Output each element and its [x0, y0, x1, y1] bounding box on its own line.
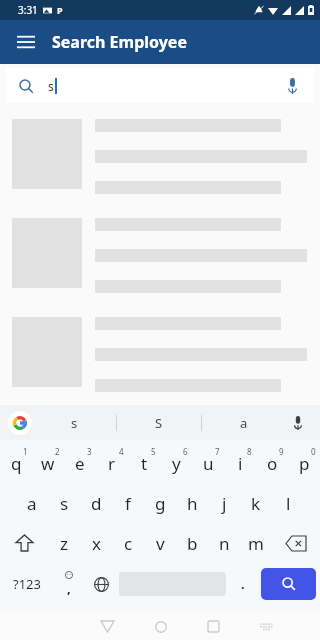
button[interactable]: t: [128, 443, 160, 483]
button[interactable]: i: [224, 443, 256, 483]
button[interactable]: b: [176, 523, 208, 563]
button[interactable]: q: [0, 443, 32, 483]
staticText: 7: [215, 446, 220, 457]
staticText: r: [108, 452, 116, 475]
button[interactable]: r: [96, 443, 128, 483]
button[interactable]: Voice search: [280, 74, 304, 98]
button[interactable]: Backspace: [272, 523, 320, 563]
staticText: 4: [119, 446, 124, 457]
staticText: w: [41, 452, 55, 475]
staticText: f: [125, 492, 131, 515]
staticText: 8: [247, 446, 252, 457]
staticText: 3:31: [18, 3, 38, 17]
button[interactable]: f: [112, 483, 144, 523]
staticText: t: [141, 452, 148, 475]
button[interactable]: w: [32, 443, 64, 483]
staticText: 9: [279, 446, 284, 457]
button[interactable]: .: [228, 563, 257, 605]
staticText: v: [156, 532, 165, 555]
button[interactable]: Google: [8, 411, 32, 435]
button[interactable]: j: [208, 483, 240, 523]
button[interactable]: h: [176, 483, 208, 523]
staticText: m: [248, 532, 264, 555]
staticText: k: [251, 492, 261, 515]
button[interactable]: s: [32, 405, 116, 440]
staticText: q: [11, 452, 22, 475]
staticText: 0: [311, 446, 316, 457]
button[interactable]: s: [6, 68, 314, 103]
staticText: 1: [23, 446, 28, 457]
button[interactable]: [0, 305, 320, 404]
staticText: i: [238, 452, 243, 475]
staticText: s: [48, 78, 54, 94]
staticText: u: [203, 452, 214, 475]
button[interactable]: s: [48, 483, 80, 523]
staticText: P: [57, 4, 63, 16]
button[interactable]: z: [48, 523, 80, 563]
staticText: p: [299, 452, 310, 475]
button[interactable]: y: [160, 443, 192, 483]
button[interactable]: n: [208, 523, 240, 563]
button[interactable]: m: [240, 523, 272, 563]
staticText: e: [75, 452, 85, 475]
button[interactable]: a: [16, 483, 48, 523]
button[interactable]: p: [288, 443, 320, 483]
button[interactable]: Recent apps: [187, 613, 240, 640]
button[interactable]: ?123: [0, 563, 53, 605]
staticText: .: [241, 575, 245, 593]
staticText: Search Employee: [52, 31, 187, 53]
button[interactable]: Search: [261, 568, 316, 600]
staticText: z: [60, 532, 68, 555]
staticText: o: [267, 452, 278, 475]
staticText: ?123: [13, 575, 41, 593]
staticText: b: [187, 532, 198, 555]
staticText: S: [155, 414, 163, 432]
staticText: 3: [87, 446, 92, 457]
staticText: d: [91, 492, 102, 515]
staticText: y: [172, 452, 181, 475]
button[interactable]: o: [256, 443, 288, 483]
button[interactable]: Home: [134, 613, 187, 640]
staticText: a: [27, 492, 37, 515]
button[interactable]: Voice input: [286, 411, 310, 435]
button[interactable]: S: [117, 405, 201, 440]
button[interactable]: Keyboard: [240, 613, 293, 640]
button[interactable]: [0, 206, 320, 305]
staticText: s: [71, 414, 78, 432]
staticText: g: [155, 492, 166, 515]
button[interactable]: l: [272, 483, 304, 523]
staticText: 2: [55, 446, 60, 457]
button[interactable]: Open navigation menu: [8, 24, 44, 60]
button[interactable]: a: [202, 405, 286, 440]
staticText: j: [222, 492, 227, 515]
button[interactable]: Shift: [0, 523, 48, 563]
staticText: x: [92, 532, 101, 555]
button[interactable]: v: [144, 523, 176, 563]
button[interactable]: g: [144, 483, 176, 523]
staticText: ,: [67, 579, 71, 597]
staticText: n: [219, 532, 230, 555]
button[interactable]: e: [64, 443, 96, 483]
button[interactable]: Back: [81, 613, 134, 640]
button[interactable]: x: [80, 523, 112, 563]
button[interactable]: c: [112, 523, 144, 563]
staticText: c: [124, 532, 133, 555]
button[interactable]: k: [240, 483, 272, 523]
staticText: 5: [151, 446, 156, 457]
button[interactable]: [0, 107, 320, 206]
staticText: s: [60, 492, 69, 515]
staticText: a: [240, 414, 248, 432]
button[interactable]: Change language: [85, 563, 117, 605]
staticText: l: [286, 492, 291, 515]
button[interactable]: d: [80, 483, 112, 523]
staticText: h: [187, 492, 198, 515]
button[interactable]: u: [192, 443, 224, 483]
staticText: 6: [183, 446, 188, 457]
button[interactable]: Emoji and comma: [53, 563, 85, 605]
